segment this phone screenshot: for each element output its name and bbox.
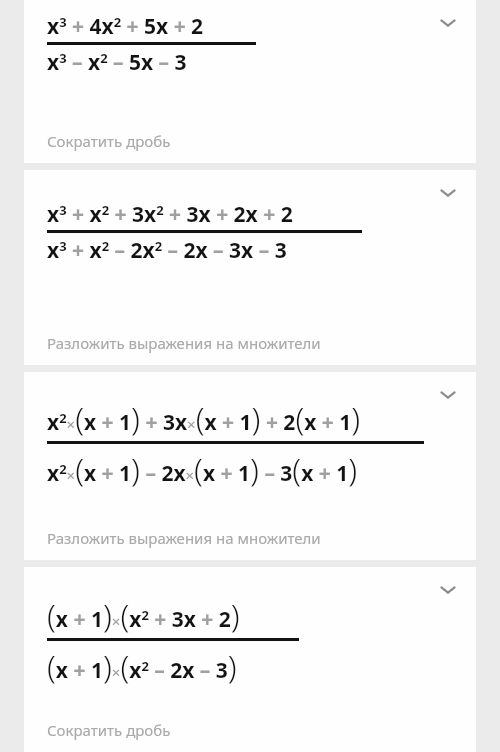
staticText: Разложить выражения на множители (47, 333, 321, 353)
button[interactable]: x3 + x2 + 3x2 + 3x + 2x + 2 (24, 170, 476, 365)
staticText: Сократить дробь (47, 131, 171, 151)
staticText: (x + 1)×(x2 + 3x + 2) (47, 593, 240, 637)
button[interactable]: Expand step (425, 0, 471, 46)
button[interactable]: Expand step (425, 567, 471, 613)
staticText: x3 + 4x2 + 5x + 2 (47, 12, 204, 41)
button[interactable]: (x + 1)×(x2 + 3x + 2) (24, 567, 476, 752)
staticText: x3 + x2 + 3x2 + 3x + 2x + 2 (47, 200, 293, 229)
staticText: Разложить выражения на множители (47, 528, 321, 548)
staticText: (x + 1)×(x2 – 2x – 3) (47, 644, 237, 688)
staticText: Сократить дробь (47, 720, 171, 740)
button[interactable]: x3 + 4x2 + 5x + 2 (24, 0, 476, 163)
staticText: x3 – x2 – 5x – 3 (47, 48, 187, 77)
button[interactable]: Expand step (425, 372, 471, 418)
staticText: x2×(x + 1) – 2x×(x + 1) – 3(x + 1) (47, 447, 358, 491)
button[interactable]: x2×(x + 1) + 3x×(x + 1) + 2(x + 1) (24, 372, 476, 560)
button[interactable]: Expand step (425, 170, 471, 216)
staticText: x3 + x2 – 2x2 – 2x – 3x – 3 (47, 236, 287, 265)
staticText: x2×(x + 1) + 3x×(x + 1) + 2(x + 1) (47, 396, 361, 440)
